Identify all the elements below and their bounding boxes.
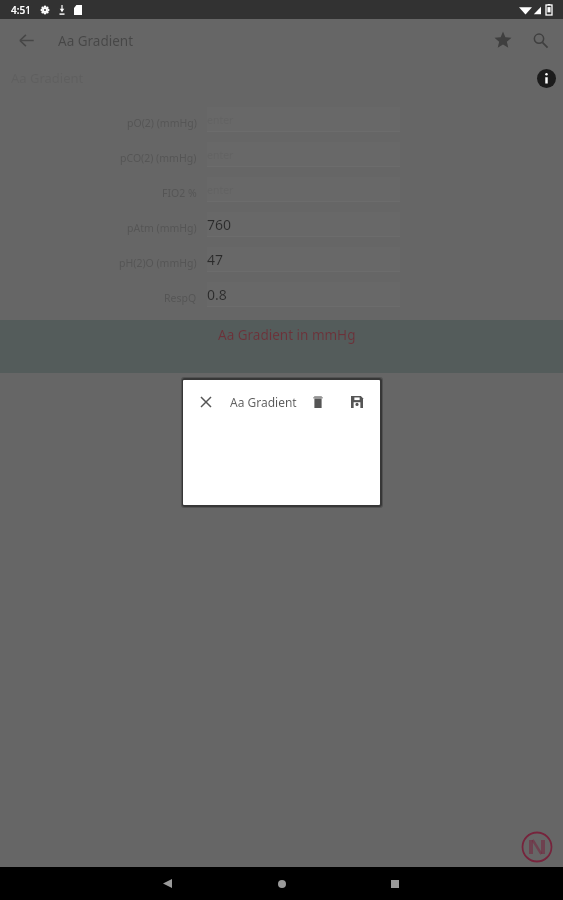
staticText: 0.8: [207, 285, 227, 304]
button[interactable]: 0.8: [207, 280, 400, 315]
button[interactable]: Search: [526, 26, 554, 54]
staticText: Aa Gradient: [230, 394, 297, 410]
button[interactable]: 760: [207, 210, 400, 245]
staticText: FIO2 %: [162, 186, 197, 200]
staticText: pCO(2) (mmHg): [120, 151, 197, 165]
button[interactable]: Back: [12, 26, 40, 54]
button[interactable]: Calculator: [521, 831, 553, 863]
staticText: Aa Gradient: [58, 32, 134, 50]
staticText: Aa Gradient in mmHg: [218, 326, 356, 344]
button[interactable]: Back: [150, 867, 184, 900]
button[interactable]: Home: [265, 867, 299, 900]
button[interactable]: 47: [207, 245, 400, 280]
button[interactable]: Info: [533, 65, 559, 91]
button[interactable]: Aa Gradient in mmHg: [0, 320, 563, 373]
button[interactable]: Save: [344, 389, 370, 415]
staticText: 47: [207, 250, 224, 269]
staticText: RespQ: [164, 291, 197, 305]
staticText: pH(2)O (mmHg): [119, 256, 197, 270]
button[interactable]: Close: [193, 389, 219, 415]
staticText: pO(2) (mmHg): [127, 116, 197, 130]
staticText: 760: [207, 215, 232, 234]
button[interactable]: Recents: [378, 867, 412, 900]
staticText: pAtm (mmHg): [127, 221, 197, 235]
staticText: 4:51: [11, 3, 31, 17]
button[interactable]: Favorite: [489, 26, 517, 54]
button[interactable]: Delete: [305, 389, 331, 415]
